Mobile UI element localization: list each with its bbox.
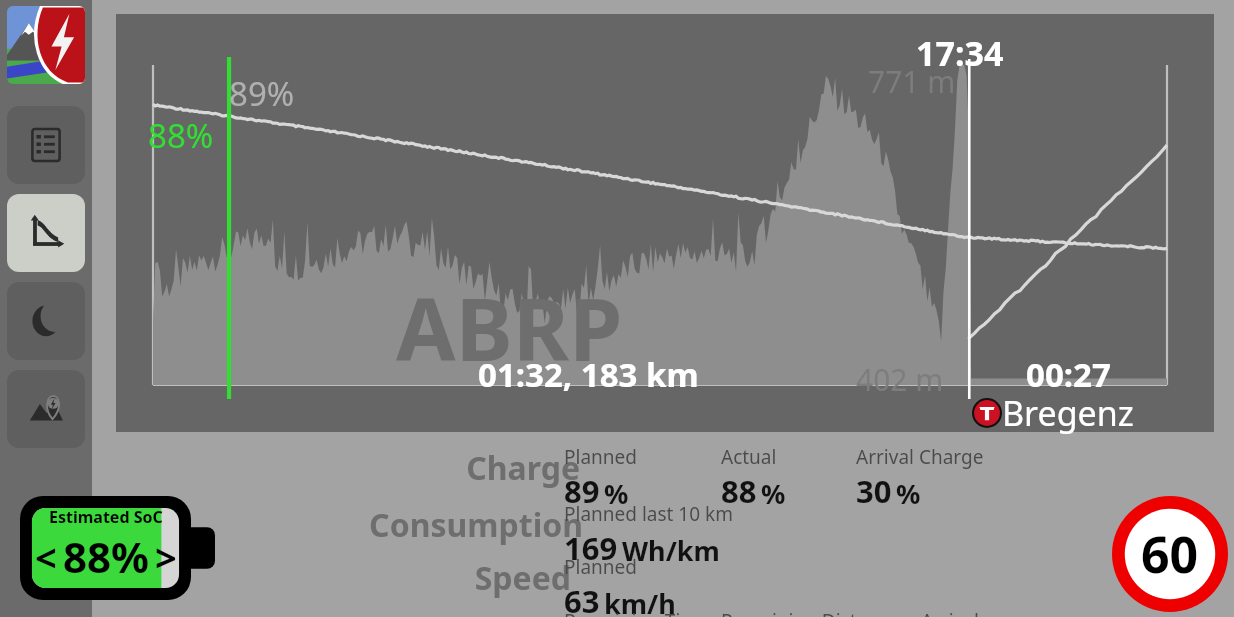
button[interactable]: Charge graph <box>7 194 85 272</box>
staticText: Planned <box>564 554 637 580</box>
staticText: Estimated SoC <box>49 506 163 528</box>
button[interactable]: Planned last 10 km <box>564 501 733 569</box>
button[interactable]: Map <box>7 370 85 448</box>
staticText: 60 <box>1141 520 1199 588</box>
button[interactable]: Planned <box>564 554 676 617</box>
staticText: ABRP <box>396 269 623 386</box>
button[interactable]: ABRP <box>116 14 1214 432</box>
staticText: 88% <box>148 113 214 158</box>
button[interactable]: Arrival Charge <box>856 444 984 512</box>
staticText: 30 <box>856 470 892 512</box>
staticText: 00:27 <box>1026 352 1111 397</box>
staticText: 771 m <box>868 61 956 102</box>
staticText: Bregenz <box>1002 390 1134 436</box>
button[interactable]: ABRP <box>7 6 85 84</box>
staticText: Remaining Time <box>564 608 709 617</box>
staticText: < <box>35 531 57 583</box>
staticText: % <box>604 475 629 512</box>
staticText: km/h <box>604 585 676 617</box>
button[interactable]: Planned <box>564 444 637 512</box>
button[interactable]: Actual <box>721 444 786 512</box>
staticText: Planned <box>564 444 637 470</box>
staticText: 169 <box>564 527 618 569</box>
staticText: 63 <box>564 580 600 617</box>
button[interactable]: Night mode <box>7 282 85 360</box>
staticText: Arrival Charge <box>856 444 984 470</box>
staticText: Planned last 10 km <box>564 501 733 527</box>
staticText: 89% <box>229 71 295 116</box>
staticText: 17:34 <box>916 30 1004 76</box>
staticText: 88 <box>721 470 757 512</box>
button[interactable]: Trip details <box>7 106 85 184</box>
button[interactable]: Estimated state of charge 88 percent <box>20 496 220 600</box>
button[interactable]: Speed limit 60 <box>1112 496 1228 612</box>
staticText: Arrival <box>921 608 979 617</box>
staticText: 01:32, 183 km <box>478 352 699 397</box>
button[interactable]: Charge <box>466 446 580 490</box>
staticText: 89 <box>564 470 600 512</box>
staticText: > <box>155 531 177 583</box>
button[interactable]: Consumption <box>369 503 583 547</box>
button[interactable]: Speed <box>474 556 571 600</box>
staticText: 402 m <box>856 359 944 400</box>
staticText: Remaining Distance <box>721 608 899 617</box>
staticText: % <box>761 475 786 512</box>
staticText: % <box>896 475 921 512</box>
staticText: Wh/km <box>622 532 720 569</box>
staticText: Actual <box>721 444 777 470</box>
staticText: 88% <box>63 528 149 585</box>
